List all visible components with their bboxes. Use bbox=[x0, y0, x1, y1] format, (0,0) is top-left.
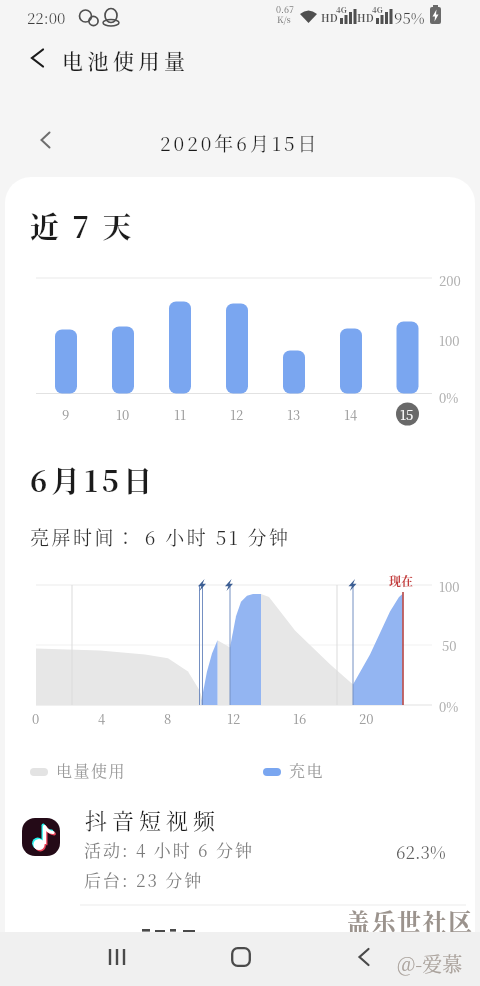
staticText: 100 bbox=[439, 577, 460, 596]
staticText: 20 bbox=[359, 709, 374, 728]
staticText: 13 bbox=[287, 405, 301, 424]
staticText: 15 bbox=[400, 405, 414, 424]
staticText: 62.3% bbox=[396, 839, 446, 863]
staticText: 0.67 bbox=[276, 3, 294, 16]
staticText: 14 bbox=[344, 405, 358, 424]
staticText: 6月15日 bbox=[30, 459, 156, 501]
button[interactable] bbox=[28, 120, 64, 160]
staticText: 12 bbox=[227, 709, 241, 728]
staticText: 0% bbox=[439, 697, 459, 716]
staticText: 16 bbox=[293, 709, 307, 728]
staticText: 8 bbox=[164, 709, 172, 728]
button[interactable] bbox=[16, 40, 60, 76]
staticText: 现在 bbox=[389, 572, 414, 589]
staticText: 电池使用量 bbox=[62, 45, 190, 75]
button[interactable] bbox=[217, 933, 265, 981]
staticText: 11 bbox=[174, 405, 187, 424]
staticText: HD bbox=[357, 10, 374, 24]
staticText: 50 bbox=[442, 636, 457, 655]
staticText: 4G bbox=[372, 4, 383, 15]
staticText: 活动: 4 小时 6 分钟 bbox=[84, 837, 254, 861]
staticText: 4 bbox=[98, 709, 106, 728]
staticText: 0 bbox=[32, 709, 40, 728]
staticText: 2020年6月15日 bbox=[160, 129, 320, 156]
staticText: 亮屏时间： 6 小时 51 分钟 bbox=[30, 523, 291, 550]
staticText: K/s bbox=[277, 13, 291, 26]
staticText: 22:00 bbox=[27, 7, 66, 29]
staticText: 12 bbox=[230, 405, 244, 424]
staticText: 后台: 23 分钟 bbox=[84, 867, 204, 891]
staticText: 近 7 天 bbox=[30, 205, 135, 247]
staticText: 95% bbox=[394, 7, 425, 29]
button[interactable]: 抖音短视频 bbox=[5, 802, 475, 907]
staticText: 4G bbox=[336, 4, 347, 15]
staticText: 100 bbox=[439, 331, 460, 350]
button[interactable] bbox=[340, 933, 388, 981]
staticText: 9 bbox=[62, 405, 70, 424]
button[interactable] bbox=[93, 933, 141, 981]
staticText: 200 bbox=[439, 271, 461, 290]
staticText: @-爱慕 bbox=[397, 949, 463, 978]
staticText: 0% bbox=[439, 388, 459, 407]
staticText: 抖音短视频 bbox=[85, 804, 221, 836]
staticText: 盖乐世社区 bbox=[346, 903, 474, 937]
staticText: 充电 bbox=[289, 759, 325, 782]
staticText: HD bbox=[321, 10, 338, 24]
staticText: 10 bbox=[116, 405, 130, 424]
staticText: 电量使用 bbox=[56, 759, 127, 782]
